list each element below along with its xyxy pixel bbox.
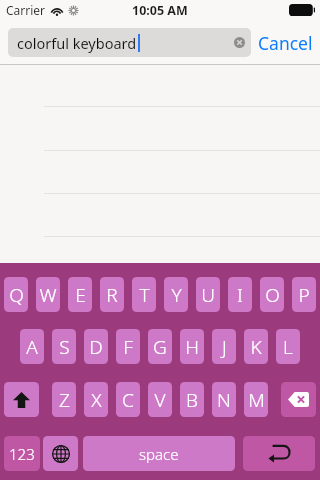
staticText: I <box>237 282 243 308</box>
staticText: F <box>123 334 133 360</box>
button[interactable]: Shift <box>4 382 39 417</box>
staticText: V <box>154 387 166 413</box>
button[interactable]: 123 <box>4 436 40 471</box>
button[interactable]: J <box>212 329 236 364</box>
staticText: Carrier <box>6 2 46 18</box>
staticText: space <box>139 444 179 464</box>
button[interactable]: P <box>292 277 316 312</box>
staticText: Cancel <box>258 31 313 55</box>
button[interactable]: Y <box>164 277 188 312</box>
button[interactable]: Z <box>52 382 76 417</box>
staticText: C <box>122 387 134 413</box>
staticText: W <box>39 282 57 308</box>
staticText: Z <box>59 387 70 413</box>
button[interactable]: G <box>148 329 172 364</box>
staticText: A <box>26 334 38 360</box>
staticText: P <box>298 282 310 308</box>
staticText: O <box>265 282 280 308</box>
button[interactable]: V <box>148 382 172 417</box>
staticText: N <box>217 387 231 413</box>
staticText: U <box>201 282 215 308</box>
staticText: L <box>283 334 293 360</box>
staticText: 123 <box>9 444 35 464</box>
button[interactable] <box>0 64 320 107</box>
button[interactable]: Clear text <box>234 37 245 48</box>
button[interactable]: B <box>180 382 204 417</box>
staticText: J <box>222 334 227 360</box>
button[interactable]: Next keyboard <box>43 436 78 471</box>
staticText: M <box>248 387 265 413</box>
button[interactable]: R <box>100 277 124 312</box>
button[interactable]: N <box>212 382 236 417</box>
button[interactable]: W <box>36 277 60 312</box>
button[interactable]: L <box>276 329 300 364</box>
staticText: X <box>91 387 102 413</box>
button[interactable]: H <box>180 329 204 364</box>
button[interactable]: F <box>116 329 140 364</box>
staticText: E <box>75 282 86 308</box>
staticText: K <box>250 334 262 360</box>
button[interactable]: C <box>116 382 140 417</box>
button[interactable]: Return <box>243 436 315 471</box>
staticText: G <box>153 334 167 360</box>
button[interactable]: Cancel <box>255 26 316 60</box>
button[interactable]: A <box>20 329 44 364</box>
staticText: Q <box>9 282 24 308</box>
button[interactable]: T <box>132 277 156 312</box>
staticText: R <box>106 282 118 308</box>
button[interactable]: M <box>244 382 268 417</box>
button[interactable]: space <box>83 436 235 471</box>
button[interactable]: K <box>244 329 268 364</box>
button[interactable]: U <box>196 277 220 312</box>
button[interactable]: I <box>228 277 252 312</box>
button[interactable]: E <box>68 277 92 312</box>
staticText: colorful keyboard <box>17 33 137 53</box>
button[interactable]: Q <box>4 277 28 312</box>
staticText: 10:05 AM <box>132 2 188 19</box>
button[interactable]: Backspace <box>281 382 316 417</box>
staticText: Y <box>171 282 182 308</box>
button[interactable]: D <box>84 329 108 364</box>
button[interactable]: colorful keyboard <box>8 28 251 57</box>
staticText: S <box>59 334 70 360</box>
button[interactable]: O <box>260 277 284 312</box>
staticText: B <box>186 387 198 413</box>
button[interactable]: S <box>52 329 76 364</box>
staticText: H <box>185 334 199 360</box>
button[interactable]: X <box>84 382 108 417</box>
staticText: T <box>139 282 150 308</box>
staticText: D <box>89 334 103 360</box>
